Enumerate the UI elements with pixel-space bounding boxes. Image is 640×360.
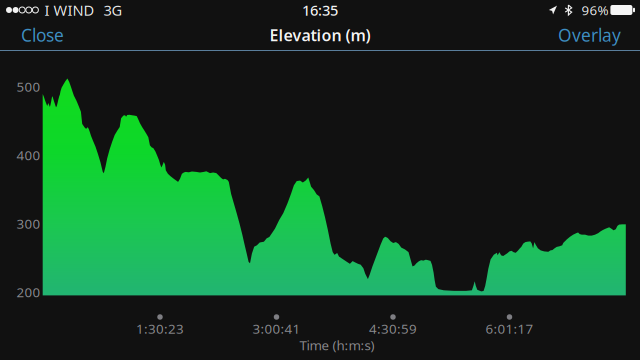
staticText: 96%: [581, 1, 608, 19]
staticText: 300: [16, 215, 40, 232]
staticText: Close: [21, 23, 64, 46]
staticText: 200: [16, 283, 40, 301]
staticText: 3G: [103, 0, 122, 20]
staticText: 6:01:17: [485, 320, 533, 337]
staticText: 4:30:59: [369, 320, 417, 337]
staticText: 500: [16, 78, 40, 95]
staticText: I WIND: [44, 0, 94, 20]
staticText: Time (h:m:s): [299, 336, 374, 354]
staticText: 3:00:41: [252, 320, 300, 337]
button[interactable]: Close: [13, 18, 72, 51]
staticText: 16:35: [302, 0, 338, 20]
staticText: Overlay: [558, 23, 621, 46]
button[interactable]: Overlay: [550, 18, 629, 51]
staticText: 400: [16, 146, 40, 164]
staticText: Elevation (m): [269, 24, 370, 46]
staticText: 1:30:23: [136, 320, 184, 337]
